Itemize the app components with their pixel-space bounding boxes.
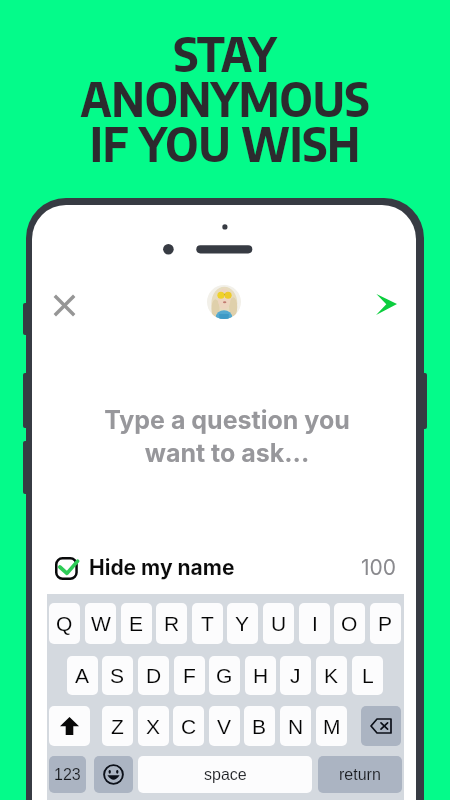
button[interactable]: A bbox=[67, 656, 98, 695]
button[interactable]: R bbox=[156, 603, 187, 644]
button[interactable]: M bbox=[316, 706, 347, 746]
staticText: S bbox=[110, 664, 125, 687]
button[interactable]: G bbox=[209, 656, 240, 695]
button[interactable]: F bbox=[174, 656, 205, 695]
staticText: G bbox=[216, 664, 233, 687]
staticText: L bbox=[362, 664, 374, 687]
staticText: IF YOU WISH bbox=[0, 115, 450, 172]
staticText: K bbox=[324, 664, 339, 687]
staticText: Hide my name bbox=[89, 555, 235, 580]
button[interactable]: Numbers bbox=[49, 756, 86, 793]
staticText: Z bbox=[111, 715, 124, 738]
button[interactable]: V bbox=[209, 706, 240, 746]
button[interactable]: L bbox=[352, 656, 383, 695]
staticText: Y bbox=[235, 612, 250, 635]
button[interactable]: H bbox=[245, 656, 276, 695]
staticText: STAY bbox=[0, 25, 450, 82]
button[interactable]: T bbox=[192, 603, 223, 644]
staticText: A bbox=[75, 664, 90, 687]
staticText: V bbox=[217, 715, 232, 738]
staticText: M bbox=[323, 715, 341, 738]
staticText: 100 bbox=[361, 555, 397, 580]
button[interactable]: X bbox=[138, 706, 169, 746]
button[interactable]: S bbox=[102, 656, 133, 695]
button[interactable]: B bbox=[244, 706, 275, 746]
staticText: F bbox=[183, 664, 196, 687]
button[interactable]: Profile photo bbox=[207, 285, 241, 319]
button[interactable]: U bbox=[263, 603, 294, 644]
button[interactable]: Close bbox=[46, 287, 82, 323]
staticText: J bbox=[290, 664, 301, 687]
staticText: N bbox=[288, 715, 304, 738]
button[interactable]: O bbox=[334, 603, 365, 644]
button[interactable]: I bbox=[299, 603, 330, 644]
button[interactable]: J bbox=[280, 656, 311, 695]
staticText: E bbox=[129, 612, 144, 635]
staticText: Type a question you want to ask... bbox=[35, 405, 416, 468]
button[interactable]: C bbox=[173, 706, 204, 746]
button[interactable]: K bbox=[316, 656, 347, 695]
staticText: Q bbox=[56, 612, 73, 635]
staticText: T bbox=[201, 612, 214, 635]
staticText: R bbox=[164, 612, 180, 635]
staticText: W bbox=[91, 612, 111, 635]
staticText: O bbox=[341, 612, 358, 635]
staticText: H bbox=[253, 664, 269, 687]
button[interactable]: Z bbox=[102, 706, 133, 746]
staticText: D bbox=[146, 664, 162, 687]
staticText: I bbox=[312, 612, 318, 635]
button[interactable]: Return bbox=[318, 756, 402, 793]
button[interactable]: Y bbox=[227, 603, 258, 644]
button[interactable]: Space bbox=[138, 756, 312, 793]
button[interactable]: Backspace bbox=[361, 706, 401, 746]
button[interactable]: P bbox=[370, 603, 401, 644]
button[interactable]: W bbox=[85, 603, 116, 644]
button[interactable]: Emoji bbox=[94, 756, 133, 793]
staticText: U bbox=[271, 612, 287, 635]
button[interactable]: D bbox=[138, 656, 169, 695]
button[interactable]: Send bbox=[368, 286, 404, 322]
staticText: return bbox=[339, 766, 381, 784]
button[interactable]: E bbox=[121, 603, 152, 644]
staticText: B bbox=[252, 715, 267, 738]
button[interactable]: Q bbox=[49, 603, 80, 644]
button[interactable]: Shift bbox=[49, 706, 90, 746]
staticText: C bbox=[181, 715, 197, 738]
staticText: ANONYMOUS bbox=[0, 70, 450, 127]
staticText: P bbox=[378, 612, 393, 635]
staticText: space bbox=[204, 766, 247, 784]
button[interactable]: Hide my name bbox=[55, 553, 235, 581]
staticText: 123 bbox=[54, 766, 81, 784]
staticText: X bbox=[146, 715, 161, 738]
button[interactable]: N bbox=[280, 706, 311, 746]
